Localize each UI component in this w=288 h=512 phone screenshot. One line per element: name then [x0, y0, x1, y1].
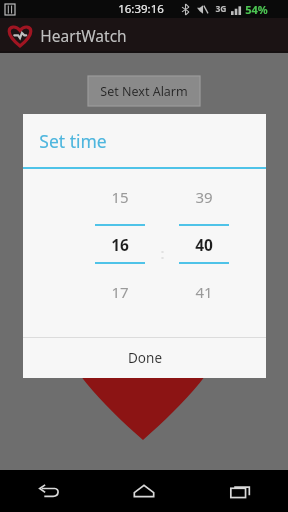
button[interactable]: 41: [173, 264, 235, 319]
staticText: Set time: [39, 129, 107, 153]
button[interactable]: Home: [96, 470, 192, 512]
staticText: 15: [111, 187, 129, 207]
button[interactable]: Back: [0, 470, 96, 512]
staticText: Set Next Alarm: [100, 83, 188, 100]
staticText: 39: [195, 187, 213, 207]
staticText: 41: [195, 282, 213, 302]
button[interactable]: 40: [173, 226, 235, 262]
button[interactable]: 15: [89, 169, 151, 224]
staticText: 40: [195, 234, 213, 255]
staticText: 3G: [215, 3, 227, 15]
button[interactable]: 16: [89, 226, 151, 262]
staticText: 54%: [245, 2, 268, 17]
staticText: :: [160, 243, 165, 263]
button[interactable]: 17: [89, 264, 151, 319]
staticText: 16:39:16: [118, 1, 164, 17]
staticText: Done: [128, 349, 162, 367]
staticText: 17: [111, 282, 129, 302]
button[interactable]: Done: [23, 338, 266, 378]
button[interactable]: Set Next Alarm: [88, 76, 200, 106]
staticText: HeartWatch: [40, 25, 127, 46]
button[interactable]: Recent apps: [192, 470, 288, 512]
button[interactable]: 39: [173, 169, 235, 224]
staticText: 16: [111, 234, 129, 255]
